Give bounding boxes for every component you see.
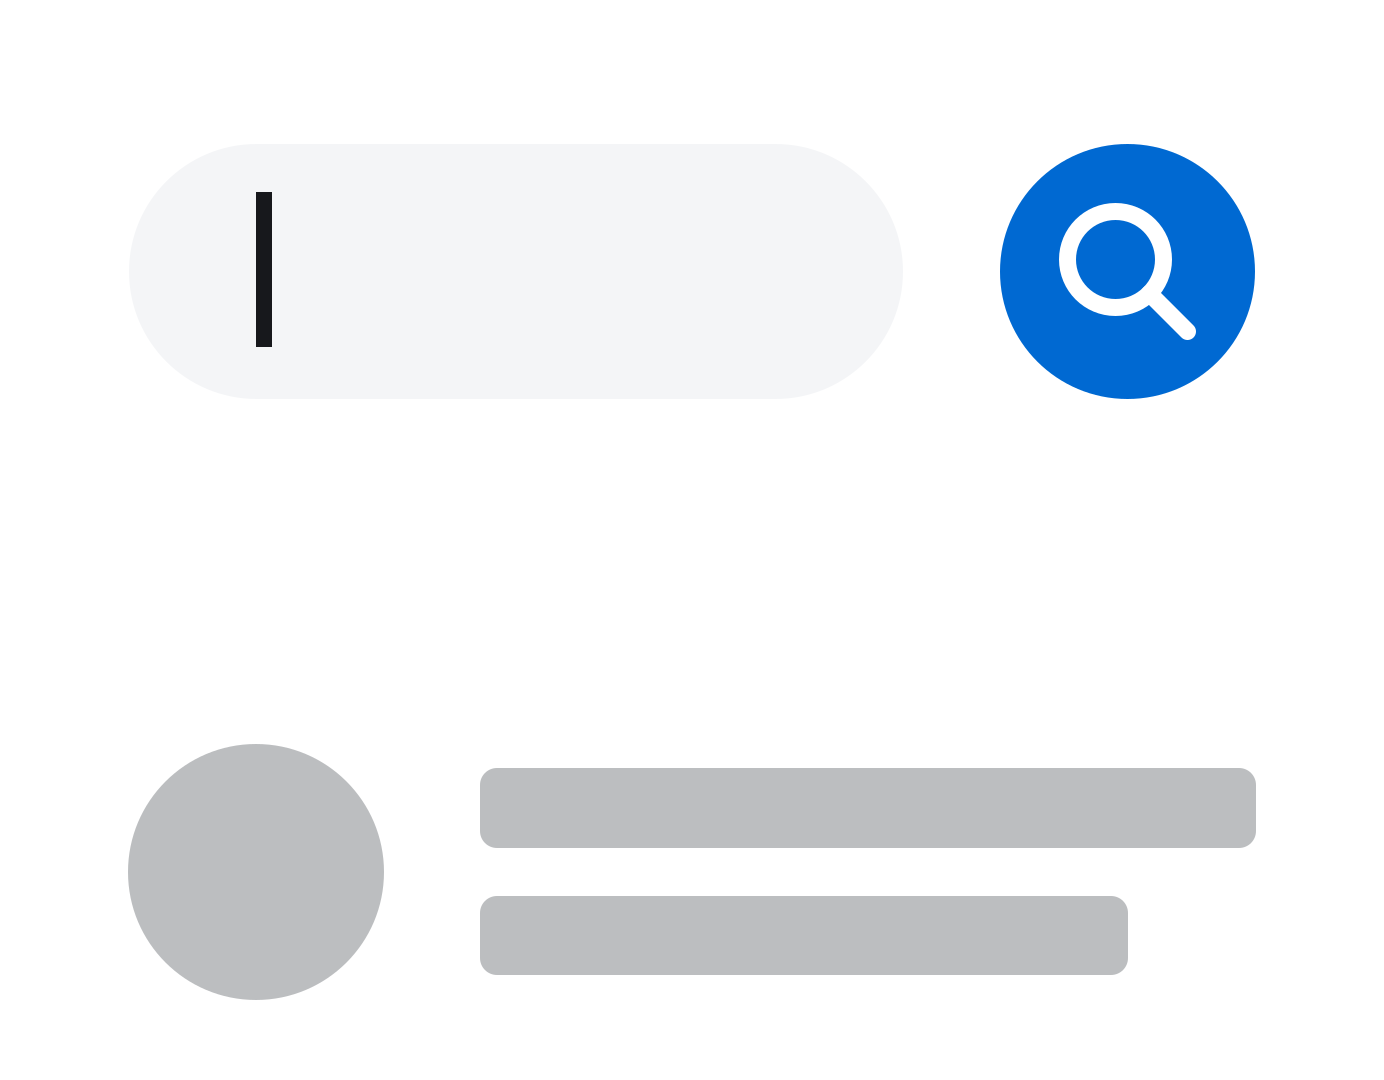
button[interactable]: Search field — [129, 144, 903, 399]
button[interactable]: Search — [1000, 144, 1255, 399]
